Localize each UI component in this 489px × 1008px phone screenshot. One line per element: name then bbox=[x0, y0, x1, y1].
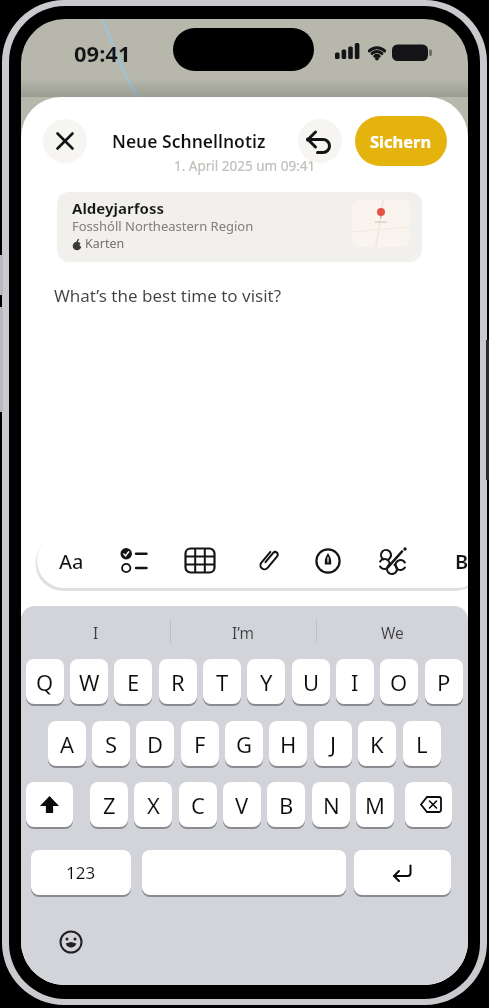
staticText: Fosshóll Northeastern Region bbox=[72, 217, 254, 235]
button[interactable] bbox=[43, 119, 87, 163]
staticText: B bbox=[455, 548, 468, 575]
button[interactable] bbox=[120, 547, 148, 575]
staticText: R bbox=[171, 667, 185, 697]
staticText: N bbox=[323, 790, 340, 820]
staticText: I’m bbox=[232, 622, 254, 643]
button[interactable]: V bbox=[223, 782, 261, 827]
button[interactable]: G bbox=[225, 721, 263, 766]
staticText: K bbox=[370, 729, 384, 759]
button[interactable] bbox=[314, 547, 342, 575]
button[interactable]: W bbox=[70, 659, 108, 704]
button[interactable]: C bbox=[179, 782, 217, 827]
staticText: We bbox=[381, 622, 404, 643]
button[interactable]: X bbox=[134, 782, 172, 827]
button[interactable]: We bbox=[316, 615, 468, 649]
button[interactable]: I bbox=[21, 615, 170, 649]
button[interactable] bbox=[185, 547, 215, 575]
staticText: X bbox=[147, 790, 160, 820]
button[interactable]: Q bbox=[26, 659, 64, 704]
staticText: What’s the best time to visit? bbox=[54, 284, 282, 307]
staticText: G bbox=[236, 729, 253, 759]
button[interactable]: 123 bbox=[31, 850, 131, 895]
button[interactable]: H bbox=[269, 721, 307, 766]
button[interactable] bbox=[378, 546, 408, 576]
button[interactable]: K bbox=[358, 721, 396, 766]
button[interactable]: T bbox=[203, 659, 241, 704]
button[interactable]: R bbox=[159, 659, 197, 704]
staticText: Q bbox=[36, 667, 54, 697]
button[interactable]: I bbox=[336, 659, 374, 704]
button[interactable]: F bbox=[181, 721, 219, 766]
staticText: J bbox=[330, 729, 337, 759]
staticText: B bbox=[279, 790, 294, 820]
staticText: Sichern bbox=[370, 130, 432, 152]
button[interactable]: A bbox=[48, 721, 86, 766]
staticText: Y bbox=[260, 667, 273, 697]
button[interactable]: I’m bbox=[170, 615, 316, 649]
staticText: Aldeyjarfoss bbox=[72, 198, 164, 218]
button[interactable]: S bbox=[92, 721, 130, 766]
button[interactable]: Z bbox=[90, 782, 128, 827]
staticText: L bbox=[416, 729, 428, 759]
staticText: 1. April 2025 um 09:41 bbox=[174, 157, 316, 175]
staticText: C bbox=[191, 790, 205, 820]
button[interactable]: P bbox=[425, 659, 463, 704]
button[interactable] bbox=[298, 119, 342, 163]
staticText: 09:41 bbox=[74, 38, 131, 66]
staticText: V bbox=[235, 790, 249, 820]
staticText: M bbox=[365, 790, 385, 820]
button[interactable]: O bbox=[380, 659, 418, 704]
staticText: T bbox=[216, 667, 229, 697]
button[interactable]: B bbox=[267, 782, 305, 827]
button[interactable]: N bbox=[312, 782, 350, 827]
button[interactable] bbox=[354, 850, 451, 895]
button[interactable] bbox=[254, 547, 282, 575]
staticText: 123 bbox=[66, 861, 96, 884]
staticText: A bbox=[60, 729, 75, 759]
button[interactable]: M bbox=[356, 782, 394, 827]
button[interactable]: E bbox=[114, 659, 152, 704]
button[interactable] bbox=[142, 850, 346, 895]
button[interactable]: D bbox=[136, 721, 174, 766]
staticText: U bbox=[303, 667, 320, 697]
button[interactable] bbox=[405, 782, 452, 827]
button[interactable]: Y bbox=[247, 659, 285, 704]
button[interactable]: Aa bbox=[52, 545, 90, 577]
staticText: F bbox=[194, 729, 206, 759]
button[interactable]: J bbox=[314, 721, 352, 766]
staticText: S bbox=[105, 729, 118, 759]
staticText: P bbox=[437, 667, 451, 697]
staticText: Karten bbox=[85, 235, 125, 252]
staticText: E bbox=[127, 667, 140, 697]
staticText: Z bbox=[103, 790, 116, 820]
staticText: Aa bbox=[59, 548, 84, 575]
button[interactable]: Aldeyjarfoss bbox=[57, 192, 422, 262]
staticText: I bbox=[93, 622, 99, 643]
staticText: Neue Schnellnotiz bbox=[112, 129, 266, 153]
staticText: H bbox=[280, 729, 297, 759]
staticText: I bbox=[351, 667, 359, 697]
staticText: W bbox=[79, 667, 100, 697]
button[interactable] bbox=[59, 930, 83, 954]
button[interactable] bbox=[26, 782, 73, 827]
button[interactable]: Sichern bbox=[355, 116, 447, 166]
staticText: O bbox=[390, 667, 408, 697]
button[interactable]: L bbox=[403, 721, 441, 766]
staticText: D bbox=[147, 729, 164, 759]
button[interactable]: B bbox=[447, 545, 468, 577]
button[interactable]: U bbox=[292, 659, 330, 704]
